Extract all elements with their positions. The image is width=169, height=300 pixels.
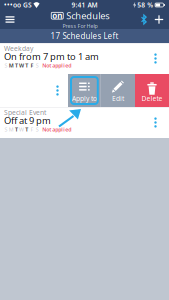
staticText: •••oo <box>4 1 21 9</box>
button[interactable]: Bluetooth <box>137 10 151 29</box>
staticText: W <box>19 62 24 69</box>
button[interactable]: Special Event <box>0 107 169 138</box>
button[interactable]: Apply to <box>68 74 101 107</box>
staticText: Delete <box>141 94 162 103</box>
staticText: Not applied <box>42 62 71 69</box>
staticText: S <box>36 62 39 69</box>
staticText: on <box>52 10 62 21</box>
staticText: GS <box>21 1 32 9</box>
staticText: W <box>19 126 24 133</box>
staticText: T <box>25 62 28 69</box>
staticText: T <box>15 126 18 133</box>
staticText: Not applied <box>42 126 71 133</box>
staticText: T <box>25 126 28 133</box>
staticText: S <box>4 126 7 133</box>
button[interactable]: Edit <box>101 74 135 107</box>
staticText: 9:41 AM <box>71 1 97 9</box>
button[interactable]: Weekday <box>0 43 169 74</box>
staticText: Weekday <box>4 44 33 53</box>
staticText: F <box>30 126 33 133</box>
staticText: Apply to <box>72 94 97 103</box>
staticText: 17 Schedules Left <box>50 31 118 41</box>
staticText: On from 7 pm to 1 am <box>4 50 99 63</box>
staticText: Press For Help <box>62 22 97 29</box>
staticText: S <box>36 126 39 133</box>
staticText: T <box>15 62 18 69</box>
staticText: M <box>9 126 14 133</box>
staticText: Schedules <box>66 9 109 22</box>
staticText: Special Event <box>4 108 46 117</box>
staticText: 58 % <box>137 1 153 9</box>
button[interactable]: Add schedule <box>151 10 167 29</box>
staticText: M <box>9 62 14 69</box>
staticText: Off at 9 pm <box>4 114 51 127</box>
staticText: F <box>30 62 33 69</box>
button[interactable]: Menu <box>1 10 19 29</box>
staticText: S <box>4 62 7 69</box>
button[interactable]: Delete <box>135 74 169 107</box>
staticText: Edit <box>112 94 124 103</box>
